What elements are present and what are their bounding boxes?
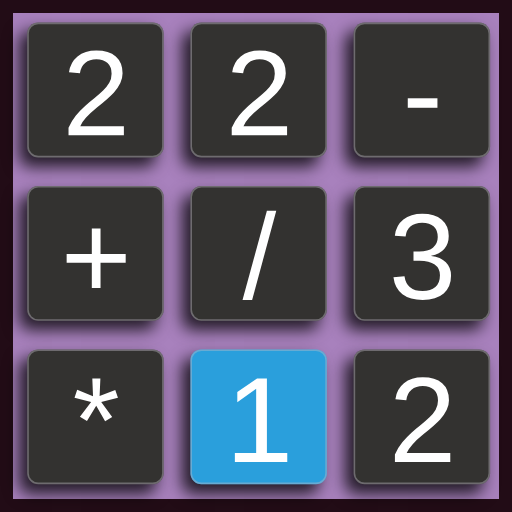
other: Calculator keypad [0, 0, 512, 512]
button[interactable]: One [190, 349, 327, 484]
button[interactable]: Minus [354, 23, 491, 158]
button[interactable]: Three [354, 186, 491, 321]
button[interactable]: Two [190, 23, 327, 158]
button[interactable]: Divide [190, 186, 327, 321]
button[interactable]: Multiply [27, 349, 164, 484]
button[interactable]: Two [354, 349, 491, 484]
button[interactable]: Plus [27, 186, 164, 321]
button[interactable]: Two [27, 23, 164, 158]
